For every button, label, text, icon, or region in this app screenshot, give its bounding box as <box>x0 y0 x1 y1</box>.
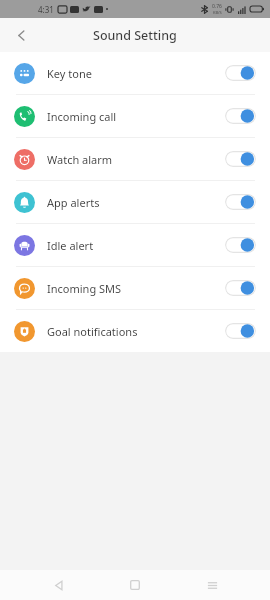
staticText: Watch alarm <box>47 152 113 167</box>
staticText: 4:31 <box>38 4 54 15</box>
staticText: 0.76 <box>212 3 222 10</box>
staticText: Incoming SMS <box>47 281 122 296</box>
button[interactable]: Key tone <box>0 52 270 94</box>
staticText: Idle alert <box>47 238 94 253</box>
button[interactable]: Back <box>41 570 77 600</box>
button[interactable]: Toggle on <box>225 108 256 124</box>
staticText: App alerts <box>47 195 100 210</box>
staticText: Goal notifications <box>47 324 138 339</box>
button[interactable]: Idle alert <box>0 224 270 266</box>
button[interactable]: Goal notifications <box>0 310 270 352</box>
button[interactable]: Toggle on <box>225 237 256 253</box>
button[interactable]: Incoming SMS <box>0 267 270 309</box>
staticText: KB/S <box>213 10 222 15</box>
button[interactable]: Watch alarm <box>0 138 270 180</box>
staticText: Incoming call <box>47 109 117 124</box>
button[interactable]: Home <box>117 570 153 600</box>
button[interactable]: Recents <box>194 570 230 600</box>
button[interactable]: Toggle on <box>225 194 256 210</box>
button[interactable]: Back <box>6 20 36 50</box>
staticText: Sound Setting <box>93 27 177 44</box>
button[interactable]: Toggle on <box>225 323 256 339</box>
button[interactable]: Toggle on <box>225 280 256 296</box>
button[interactable]: Toggle on <box>225 151 256 167</box>
button[interactable]: Toggle on <box>225 65 256 81</box>
button[interactable]: App alerts <box>0 181 270 223</box>
staticText: Key tone <box>47 66 92 81</box>
button[interactable]: Incoming call <box>0 95 270 137</box>
